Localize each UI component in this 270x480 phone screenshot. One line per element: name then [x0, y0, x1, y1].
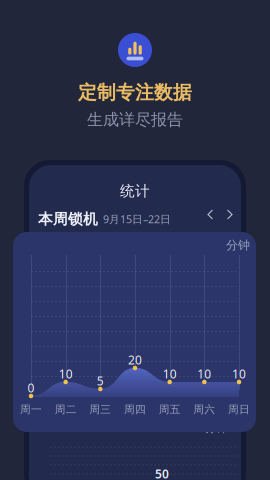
staticText: 周二 — [55, 403, 77, 416]
staticText: 本周锁机 — [38, 210, 98, 228]
staticText: 周一 — [20, 403, 42, 416]
staticText: 生成详尽报告 — [87, 110, 183, 130]
staticText: 10 — [232, 366, 246, 382]
staticText: 5 — [97, 373, 104, 389]
staticText: 周四 — [124, 403, 146, 416]
staticText: 周五 — [159, 403, 181, 416]
staticText: 10 — [197, 366, 211, 382]
staticText: 20 — [128, 352, 142, 368]
staticText: 0 — [27, 380, 34, 396]
staticText: 分钟 — [205, 422, 227, 435]
staticText: 定制专注数据 — [78, 81, 192, 104]
staticText: 周六 — [193, 403, 215, 416]
staticText: 统计 — [120, 182, 150, 200]
staticText: 周三 — [89, 403, 111, 416]
staticText: 周日 — [228, 403, 250, 416]
staticText: 10 — [59, 366, 73, 382]
staticText: 50 — [155, 466, 169, 480]
staticText: 分钟 — [226, 238, 250, 253]
staticText: 9月15日–22日 — [103, 212, 171, 226]
staticText: 10 — [163, 366, 177, 382]
